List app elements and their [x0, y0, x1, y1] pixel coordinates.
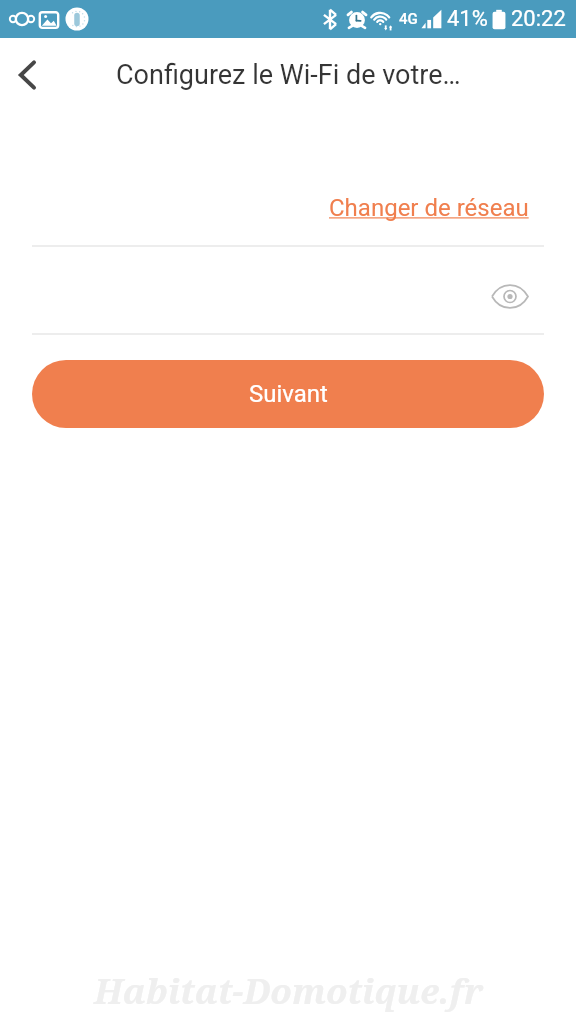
- staticText: Configurez le Wi-Fi de votre…: [116, 59, 461, 91]
- staticText: 4G: [399, 10, 418, 28]
- staticText: 20:22: [511, 6, 566, 32]
- staticText: Suivant: [249, 380, 328, 408]
- button[interactable]: Afficher le mot de passe: [484, 270, 536, 322]
- staticText: Changer de réseau: [329, 194, 529, 222]
- button[interactable]: Suivant: [32, 360, 544, 428]
- staticText: 41%: [447, 6, 488, 32]
- button[interactable]: Back: [4, 51, 52, 99]
- staticText: Habitat-Domotique.fr: [94, 967, 483, 1015]
- button[interactable]: Changer de réseau: [318, 190, 538, 226]
- button[interactable]: Mot de passe: [32, 247, 544, 333]
